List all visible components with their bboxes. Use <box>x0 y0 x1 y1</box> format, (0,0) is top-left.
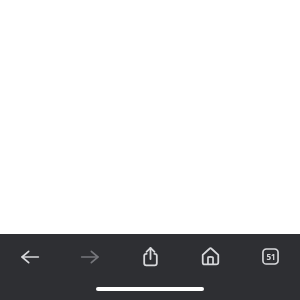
button[interactable]: Share <box>120 234 180 279</box>
button[interactable]: Tabs, 51 open <box>240 234 300 279</box>
button[interactable]: Home <box>180 234 240 279</box>
button[interactable]: Forward <box>60 234 120 279</box>
button[interactable]: Back <box>0 234 60 279</box>
staticText: 51 <box>266 251 276 262</box>
